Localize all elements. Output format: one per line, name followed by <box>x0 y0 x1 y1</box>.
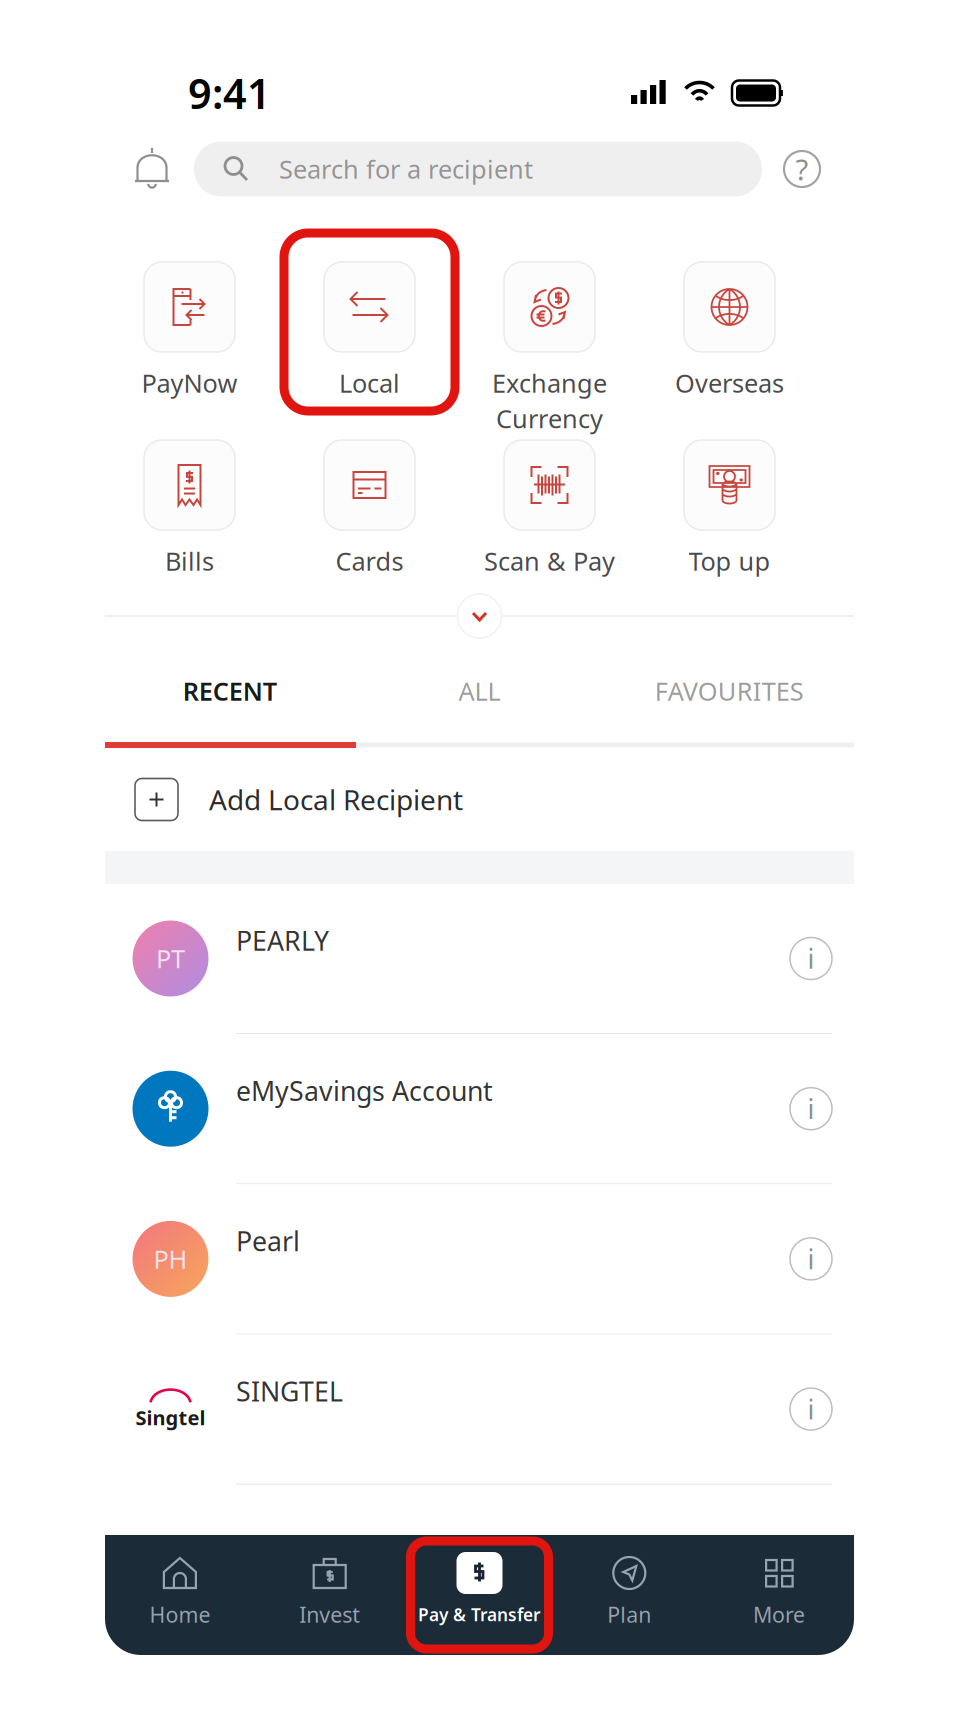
button[interactable]: PT <box>105 884 854 1034</box>
button[interactable]: More <box>704 1535 854 1655</box>
staticText: Pearl <box>236 1223 300 1259</box>
staticText: Local <box>339 366 400 400</box>
button[interactable]: PayNow <box>99 262 279 440</box>
button[interactable]: Recipient info <box>790 1088 832 1130</box>
staticText: Currency <box>496 402 603 435</box>
button[interactable]: Search for a recipient <box>194 141 762 196</box>
staticText: Search for a recipient <box>279 152 533 186</box>
staticText: Plan <box>607 1600 651 1629</box>
button[interactable]: PH <box>105 1184 854 1335</box>
staticText: RECENT <box>183 674 277 708</box>
button[interactable]: Recipient info <box>790 1388 832 1430</box>
button[interactable]: Scan & Pay <box>459 440 639 618</box>
staticText: FAVOURITES <box>655 674 804 708</box>
button[interactable]: ALL <box>355 640 604 742</box>
button[interactable]: Home <box>105 1535 255 1655</box>
staticText: Exchange <box>492 366 607 400</box>
button[interactable]: Recipient info <box>790 1238 832 1280</box>
staticText: i <box>807 1241 814 1277</box>
staticText: ? <box>795 149 808 188</box>
staticText: PEARLY <box>236 923 329 958</box>
staticText: Invest <box>299 1600 360 1629</box>
staticText: i <box>807 941 814 976</box>
button[interactable]: Pay & Transfer <box>405 1535 554 1655</box>
button[interactable]: Local <box>279 262 459 440</box>
button[interactable]: Help <box>778 145 826 193</box>
staticText: Add Local Recipient <box>209 781 463 818</box>
button[interactable]: Recipient info <box>790 937 832 979</box>
staticText: Top up <box>688 544 770 578</box>
staticText: PayNow <box>141 366 237 400</box>
staticText: Pay & Transfer <box>418 1603 541 1626</box>
staticText: ALL <box>458 674 500 708</box>
button[interactable]: Add Local Recipient <box>105 748 854 851</box>
staticText: Singtel <box>135 1404 205 1431</box>
staticText: Scan & Pay <box>484 544 615 578</box>
button[interactable]: Exchange <box>459 262 639 440</box>
button[interactable]: Top up <box>639 440 819 618</box>
button[interactable]: Overseas <box>639 262 819 440</box>
button[interactable]: Singtel <box>105 1335 854 1485</box>
button[interactable]: eMySavings Account <box>105 1034 854 1184</box>
staticText: PH <box>153 1242 187 1276</box>
button[interactable]: Plan <box>554 1535 704 1655</box>
staticText: Cards <box>335 544 403 578</box>
staticText: Home <box>149 1600 210 1629</box>
button[interactable]: Expand <box>457 594 501 638</box>
staticText: i <box>807 1091 814 1126</box>
button[interactable]: Invest <box>255 1535 405 1655</box>
button[interactable]: Bills <box>99 440 279 618</box>
staticText: i <box>807 1391 814 1427</box>
button[interactable]: FAVOURITES <box>604 640 854 742</box>
staticText: More <box>753 1600 805 1629</box>
button[interactable]: Cards <box>279 440 459 618</box>
staticText: Bills <box>165 544 214 578</box>
staticText: eMySavings Account <box>236 1073 493 1108</box>
button[interactable]: RECENT <box>105 640 355 742</box>
staticText: PT <box>156 942 185 975</box>
staticText: Overseas <box>675 366 784 400</box>
button[interactable]: Notifications <box>121 138 183 200</box>
staticText: 9:41 <box>188 66 271 120</box>
staticText: SINGTEL <box>236 1373 343 1409</box>
